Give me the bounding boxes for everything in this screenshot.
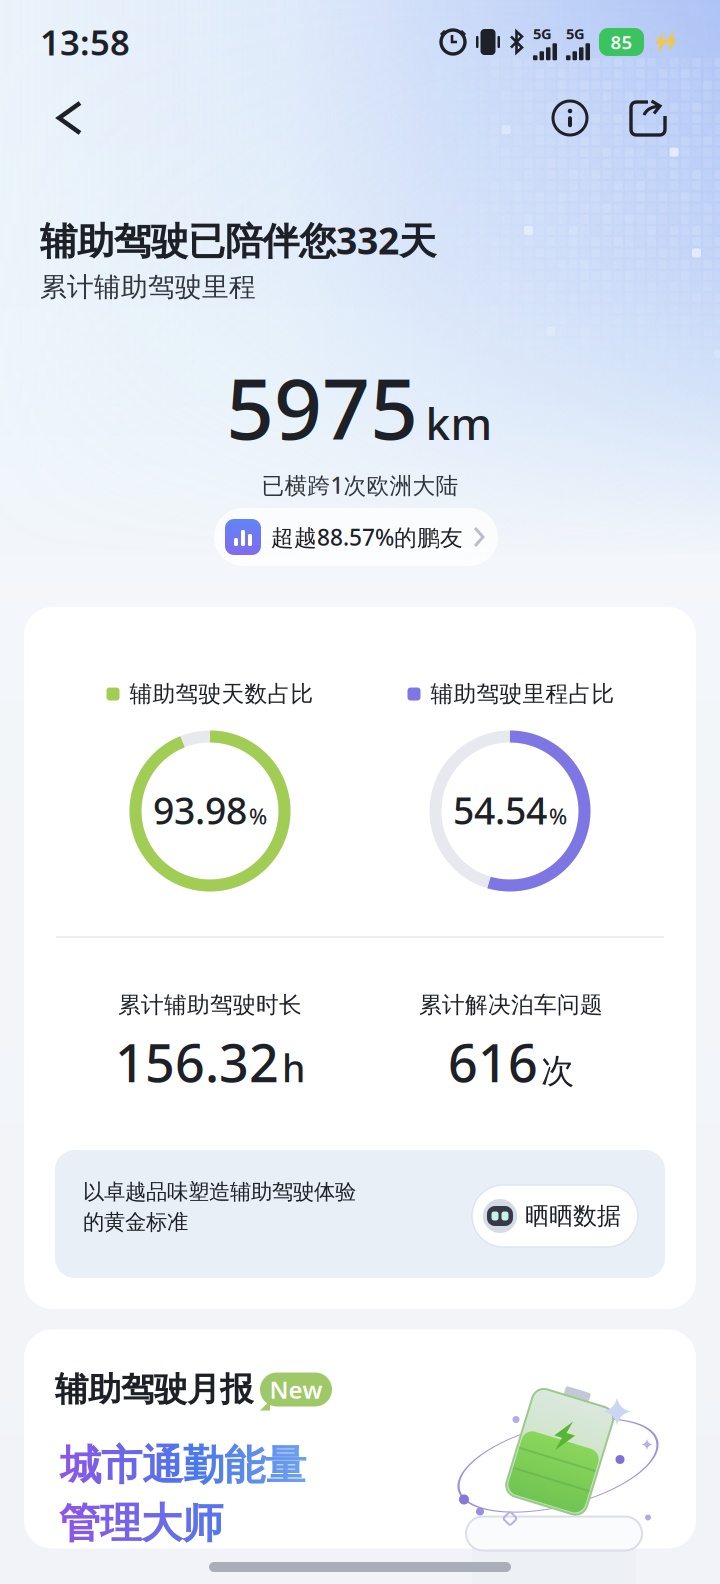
button[interactable]: Share xyxy=(629,99,667,137)
staticText: % xyxy=(549,802,567,830)
staticText: 辅助驾驶天数占比 xyxy=(129,680,313,708)
staticText: 54.54 xyxy=(453,785,547,835)
staticText: 5G xyxy=(533,24,552,43)
staticText: New xyxy=(269,1374,322,1405)
staticText: 辅助驾驶已陪伴您332天 xyxy=(40,215,436,265)
staticText: 晒晒数据 xyxy=(525,1201,621,1231)
staticText: 累计解决泊车问题 xyxy=(419,991,603,1019)
staticText: 辅助驾驶月报 xyxy=(55,1369,253,1410)
button[interactable]: 超越88.57%的鹏友 xyxy=(214,508,498,566)
staticText: 累计辅助驾驶时长 xyxy=(118,991,302,1019)
staticText: km xyxy=(425,394,492,452)
staticText: h xyxy=(282,1043,305,1092)
staticText: 616 xyxy=(448,1027,538,1097)
staticText: 以卓越品味塑造辅助驾驶体验 xyxy=(83,1179,356,1205)
staticText: 156.32 xyxy=(115,1027,279,1097)
staticText: 的黄金标准 xyxy=(83,1209,188,1235)
staticText: 次 xyxy=(541,1051,574,1091)
staticText: 辅助驾驶里程占比 xyxy=(430,680,614,708)
staticText: 13:58 xyxy=(40,19,130,65)
staticText: 93.98 xyxy=(153,785,247,835)
staticText: 5975 xyxy=(226,351,418,463)
staticText: 累计辅助驾驶里程 xyxy=(40,271,256,303)
staticText: 85 xyxy=(610,30,632,54)
button[interactable]: 辅助驾驶月报 xyxy=(24,1329,696,1548)
staticText: 超越88.57%的鹏友 xyxy=(271,522,463,552)
staticText: 5G xyxy=(566,24,585,43)
staticText: 已横跨1次欧洲大陆 xyxy=(261,470,458,500)
button[interactable]: Back xyxy=(43,92,95,144)
button[interactable]: 晒晒数据 xyxy=(472,1185,638,1247)
staticText: % xyxy=(249,802,267,830)
button[interactable]: Info xyxy=(550,98,590,138)
